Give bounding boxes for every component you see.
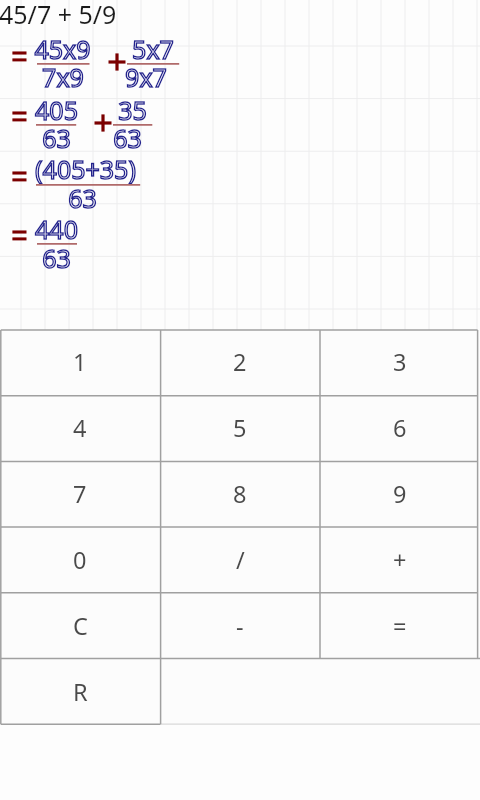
- button[interactable]: 0: [0, 528, 160, 594]
- button[interactable]: equals: [12, 166, 32, 190]
- staticText: 63: [42, 241, 71, 275]
- staticText: 8: [233, 478, 247, 510]
- button[interactable]: 5: [160, 396, 320, 462]
- button[interactable]: C: [0, 594, 160, 660]
- staticText: 2: [233, 346, 247, 378]
- staticText: -: [236, 610, 244, 642]
- button[interactable]: -: [160, 594, 320, 660]
- staticText: C: [73, 610, 88, 642]
- staticText: R: [73, 676, 88, 708]
- staticText: 9x7: [125, 60, 167, 94]
- staticText: 5x7: [132, 32, 174, 66]
- staticText: 0: [73, 544, 87, 576]
- button[interactable]: 9: [320, 462, 480, 528]
- button[interactable]: R: [0, 660, 160, 726]
- button[interactable]: equals: [12, 225, 32, 249]
- staticText: 7x9: [42, 60, 84, 94]
- button[interactable]: 7: [0, 462, 160, 528]
- button[interactable]: =: [320, 594, 480, 660]
- button[interactable]: 8: [160, 462, 320, 528]
- staticText: 9: [393, 478, 407, 510]
- staticText: 63: [68, 181, 97, 215]
- staticText: 45/7 + 5/9: [0, 0, 117, 31]
- staticText: /: [236, 544, 245, 576]
- staticText: 35: [118, 93, 147, 127]
- staticText: 3: [393, 346, 407, 378]
- staticText: (405+35): [35, 152, 136, 186]
- staticText: 1: [73, 346, 87, 378]
- staticText: 63: [42, 121, 71, 155]
- staticText: 5: [233, 412, 247, 444]
- button[interactable]: 6: [320, 396, 480, 462]
- staticText: 45x9: [34, 32, 91, 66]
- button[interactable]: equals: [12, 106, 32, 130]
- button[interactable]: 3: [320, 330, 480, 396]
- staticText: =: [393, 610, 407, 642]
- button[interactable]: 4: [0, 396, 160, 462]
- staticText: 6: [393, 412, 407, 444]
- staticText: 440: [35, 212, 78, 246]
- button[interactable]: /: [160, 528, 320, 594]
- staticText: 7: [73, 478, 87, 510]
- button[interactable]: equals: [12, 46, 32, 70]
- staticText: +: [393, 544, 407, 576]
- button[interactable]: 2: [160, 330, 320, 396]
- staticText: 4: [73, 412, 87, 444]
- button[interactable]: +: [320, 528, 480, 594]
- staticText: 405: [35, 93, 78, 127]
- staticText: 63: [113, 121, 142, 155]
- button[interactable]: 1: [0, 330, 160, 396]
